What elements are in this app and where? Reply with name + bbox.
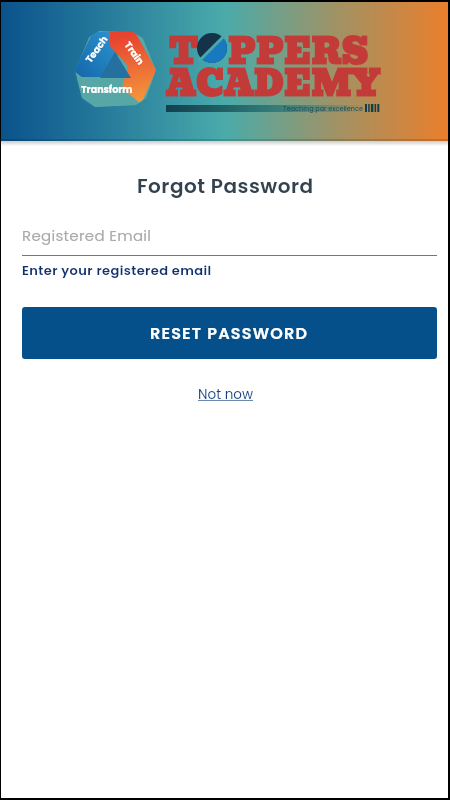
staticText: T: [169, 24, 199, 80]
staticText: Enter your registered email: [22, 261, 212, 279]
button[interactable]: RESET PASSWORD: [22, 307, 437, 359]
staticText: Train: [122, 39, 147, 68]
button[interactable]: Registered Email: [22, 219, 437, 252]
staticText: Registered Email: [22, 225, 152, 246]
staticText: Transform: [81, 83, 133, 96]
staticText: Forgot Password: [137, 172, 314, 200]
staticText: Teaching par excellence: [283, 104, 363, 113]
staticText: PPERS: [228, 24, 369, 80]
button[interactable]: Not now: [198, 385, 253, 404]
staticText: Teach: [82, 32, 111, 65]
staticText: RESET PASSWORD: [150, 322, 309, 344]
staticText: Not now: [198, 385, 253, 404]
staticText: ACADEMY: [166, 56, 382, 112]
